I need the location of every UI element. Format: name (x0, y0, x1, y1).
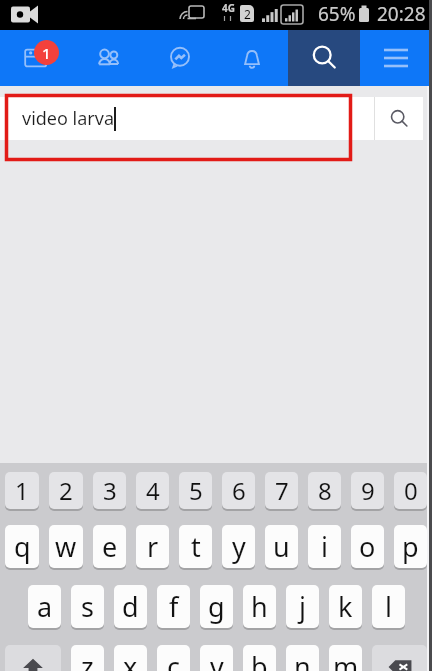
staticText: video larva (22, 106, 114, 131)
staticText: 3 (103, 474, 117, 507)
staticText: m (333, 648, 359, 671)
button[interactable]: Backspace (372, 645, 427, 671)
staticText: g (208, 588, 225, 625)
button[interactable]: Notifications (216, 30, 288, 86)
button[interactable]: h (243, 585, 276, 628)
button[interactable]: z (71, 645, 104, 671)
staticText: q (14, 528, 31, 565)
button[interactable]: m (329, 645, 362, 671)
button[interactable]: Messenger (144, 30, 216, 86)
staticText: o (359, 528, 376, 565)
staticText: b (251, 648, 268, 671)
button[interactable]: k (329, 585, 362, 628)
button[interactable]: video larva (0, 97, 374, 140)
staticText: 1 (42, 43, 51, 63)
staticText: i (321, 528, 328, 565)
button[interactable]: y (222, 525, 255, 568)
button[interactable]: q (5, 525, 39, 568)
button[interactable]: i (308, 525, 341, 568)
staticText: 0 (404, 474, 418, 507)
staticText: a (37, 588, 53, 625)
button[interactable]: Search (288, 30, 360, 86)
button[interactable]: u (265, 525, 298, 568)
button[interactable]: b (243, 645, 276, 671)
staticText: k (338, 588, 353, 625)
button[interactable]: r (136, 525, 169, 568)
staticText: 6 (232, 474, 246, 507)
button[interactable]: s (71, 585, 104, 628)
button[interactable]: 0 (394, 472, 427, 509)
button[interactable]: t (179, 525, 212, 568)
staticText: 65% (318, 1, 356, 27)
staticText: v (210, 648, 224, 671)
button[interactable]: Search (375, 97, 423, 140)
staticText: n (294, 648, 311, 671)
staticText: e (102, 528, 118, 565)
button[interactable]: 8 (308, 472, 341, 509)
button[interactable]: g (200, 585, 233, 628)
staticText: p (402, 528, 419, 565)
button[interactable]: 7 (265, 472, 298, 509)
button[interactable]: j (286, 585, 319, 628)
staticText: 1 (15, 474, 29, 507)
staticText: 9 (361, 474, 375, 507)
button[interactable]: Menu (360, 30, 432, 86)
staticText: d (122, 588, 139, 625)
staticText: 4 (146, 474, 160, 507)
staticText: u (273, 528, 290, 565)
staticText: l (385, 588, 392, 625)
staticText: 20:28 (377, 1, 426, 27)
button[interactable]: 4 (136, 472, 169, 509)
staticText: f (169, 588, 179, 625)
button[interactable]: 2 (49, 472, 83, 509)
staticText: 2 (59, 474, 73, 507)
staticText: 4G (222, 1, 235, 15)
staticText: x (123, 648, 138, 671)
button[interactable]: 6 (222, 472, 255, 509)
button[interactable]: a (28, 585, 61, 628)
staticText: s (81, 588, 94, 625)
button[interactable]: d (114, 585, 147, 628)
button[interactable]: p (394, 525, 427, 568)
button[interactable]: f (157, 585, 190, 628)
button[interactable]: 5 (179, 472, 212, 509)
button[interactable]: c (157, 645, 190, 671)
button[interactable]: 9 (351, 472, 384, 509)
staticText: t (191, 528, 201, 565)
button[interactable]: e (93, 525, 126, 568)
button[interactable]: o (351, 525, 384, 568)
staticText: h (251, 588, 268, 625)
button[interactable]: l (372, 585, 405, 628)
staticText: 2 (244, 6, 251, 22)
staticText: y (232, 528, 246, 565)
staticText: 7 (275, 474, 289, 507)
button[interactable]: 1 (5, 472, 39, 509)
button[interactable]: Home (0, 30, 72, 86)
staticText: c (167, 648, 180, 671)
button[interactable]: Shift (5, 645, 61, 671)
staticText: 5 (189, 474, 203, 507)
staticText: r (147, 528, 159, 565)
button[interactable]: w (49, 525, 83, 568)
button[interactable]: v (200, 645, 233, 671)
staticText: j (299, 588, 306, 625)
staticText: 8 (318, 474, 332, 507)
button[interactable]: Friends (72, 30, 144, 86)
staticText: w (55, 528, 77, 565)
staticText: z (81, 648, 94, 671)
button[interactable]: 3 (93, 472, 126, 509)
button[interactable]: x (114, 645, 147, 671)
button[interactable]: n (286, 645, 319, 671)
